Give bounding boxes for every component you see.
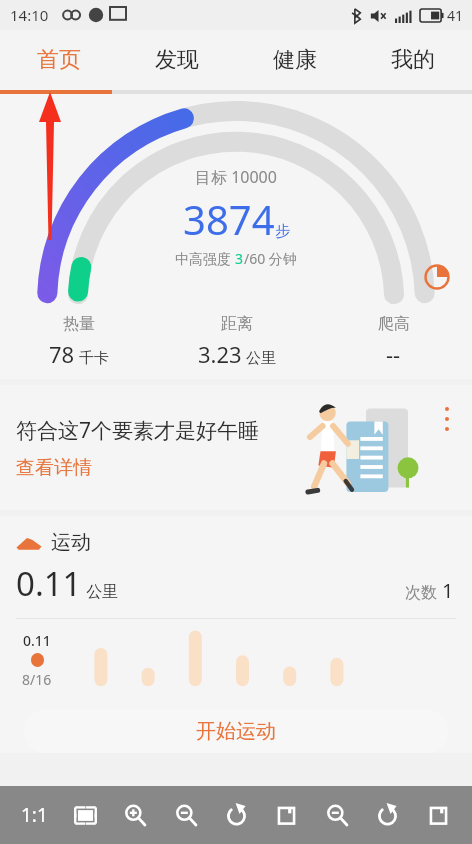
staticText: 步 (275, 222, 290, 241)
button[interactable]: 旋转2 (365, 793, 409, 837)
button[interactable]: 保存2 (416, 793, 460, 837)
staticText: 开始运动 (196, 719, 276, 744)
button[interactable]: 运动 (0, 516, 472, 555)
staticText: 14:10 (10, 5, 49, 25)
button[interactable]: 开始运动 (24, 709, 448, 753)
staticText: 公里 (242, 347, 276, 367)
button[interactable]: 放大 (113, 793, 157, 837)
staticText: 健康 (273, 46, 317, 74)
staticText: /60 分钟 (244, 249, 297, 268)
staticText: 1:1 (21, 802, 48, 828)
button[interactable]: 爬高 (315, 314, 472, 369)
staticText: 41 (447, 6, 464, 25)
staticText: 首页 (37, 46, 81, 74)
button[interactable]: 缩小 (164, 793, 208, 837)
staticText: 公里 (82, 580, 119, 602)
button[interactable]: 首页 (0, 30, 118, 90)
staticText: 3 (235, 249, 244, 268)
button[interactable]: 更多 (436, 407, 458, 447)
button[interactable]: 查看详情 (16, 456, 92, 480)
staticText: 符合这7个要素才是好午睡 (16, 416, 260, 445)
staticText: 次数 (405, 581, 442, 603)
staticText: 目标 10000 (195, 166, 277, 188)
button[interactable]: 旋转 (214, 793, 258, 837)
staticText: 78 (49, 339, 75, 369)
staticText: 运动 (51, 530, 91, 555)
staticText: 热量 (63, 314, 95, 334)
button[interactable]: 发现 (118, 30, 236, 90)
button[interactable]: 热量 (0, 314, 158, 369)
staticText: 中高强度 (175, 249, 235, 268)
staticText: 我的 (391, 46, 435, 74)
staticText: 千卡 (75, 347, 109, 367)
button[interactable]: 数据统计 (420, 260, 454, 294)
button[interactable]: 我的 (354, 30, 472, 90)
staticText: 8/16 (22, 670, 52, 689)
staticText: 0.11 (16, 561, 82, 606)
button[interactable]: 符合这7个要素才是好午睡 (0, 385, 472, 510)
staticText: 距离 (221, 314, 253, 334)
button[interactable]: 选区 (63, 793, 107, 837)
button[interactable]: 距离 (158, 314, 315, 369)
staticText: -- (386, 339, 401, 369)
button[interactable]: 缩小2 (315, 793, 359, 837)
button[interactable]: 健康 (236, 30, 354, 90)
button[interactable]: 1:1 (12, 793, 56, 837)
button[interactable]: 保存 (264, 793, 308, 837)
staticText: 发现 (155, 46, 199, 74)
staticText: 爬高 (378, 314, 410, 334)
staticText: 1 (442, 577, 454, 604)
staticText: 3874 (183, 192, 275, 246)
staticText: 0.11 (23, 631, 51, 650)
staticText: 3.23 (198, 339, 242, 369)
